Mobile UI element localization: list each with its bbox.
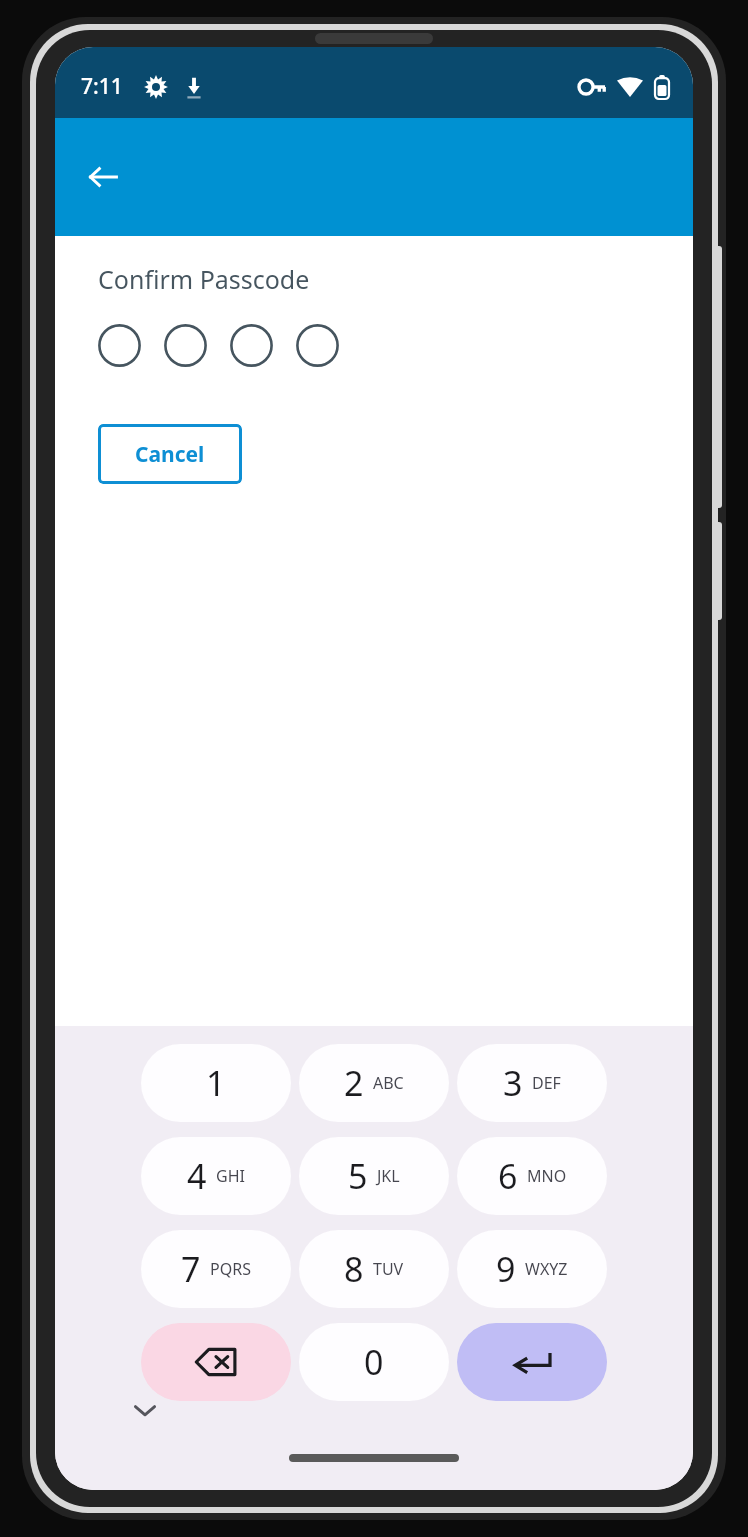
button[interactable]: 8: [299, 1230, 449, 1308]
staticText: PQRS: [210, 1258, 251, 1280]
button[interactable]: 1: [141, 1044, 291, 1122]
staticText: 3: [503, 1060, 523, 1106]
staticText: 5: [348, 1153, 368, 1199]
staticText: 7: [181, 1246, 201, 1292]
staticText: 1: [206, 1060, 226, 1106]
button[interactable]: 4: [141, 1137, 291, 1215]
staticText: 4: [187, 1153, 207, 1199]
button[interactable]: Cancel: [98, 424, 242, 484]
staticText: Cancel: [135, 440, 205, 469]
staticText: 6: [498, 1153, 518, 1199]
button[interactable]: 6: [457, 1137, 607, 1215]
button[interactable]: 0: [299, 1323, 449, 1401]
button[interactable]: 5: [299, 1137, 449, 1215]
button[interactable]: Enter: [457, 1323, 607, 1401]
staticText: TUV: [373, 1258, 404, 1280]
staticText: 2: [344, 1060, 364, 1106]
staticText: 7:11: [81, 72, 123, 101]
button[interactable]: 3: [457, 1044, 607, 1122]
staticText: JKL: [377, 1165, 400, 1187]
button[interactable]: 7: [141, 1230, 291, 1308]
staticText: GHI: [216, 1165, 245, 1187]
staticText: MNO: [527, 1165, 567, 1187]
staticText: 0: [364, 1339, 384, 1385]
staticText: 9: [496, 1246, 516, 1292]
button[interactable]: Hide keyboard: [123, 1388, 167, 1432]
button[interactable]: Back: [75, 149, 131, 205]
staticText: WXYZ: [525, 1258, 568, 1280]
button[interactable]: 9: [457, 1230, 607, 1308]
staticText: ABC: [373, 1072, 404, 1094]
staticText: 8: [344, 1246, 364, 1292]
staticText: Confirm Passcode: [98, 262, 310, 296]
button[interactable]: Backspace: [141, 1323, 291, 1401]
staticText: DEF: [532, 1072, 561, 1094]
button[interactable]: 2: [299, 1044, 449, 1122]
